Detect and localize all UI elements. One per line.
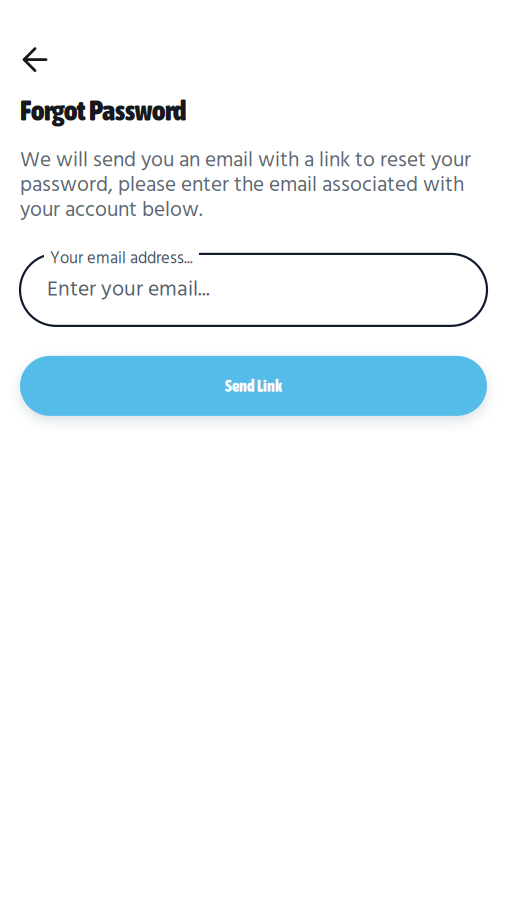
staticText: Send Link: [225, 377, 282, 395]
button[interactable]: Send Link: [20, 356, 487, 416]
staticText: We will send you an email with a link to…: [20, 148, 471, 223]
staticText: Enter your email...: [47, 273, 210, 307]
staticText: Forgot Password: [20, 94, 186, 126]
button[interactable]: Back: [20, 42, 65, 78]
staticText: Your email address...: [50, 246, 193, 272]
